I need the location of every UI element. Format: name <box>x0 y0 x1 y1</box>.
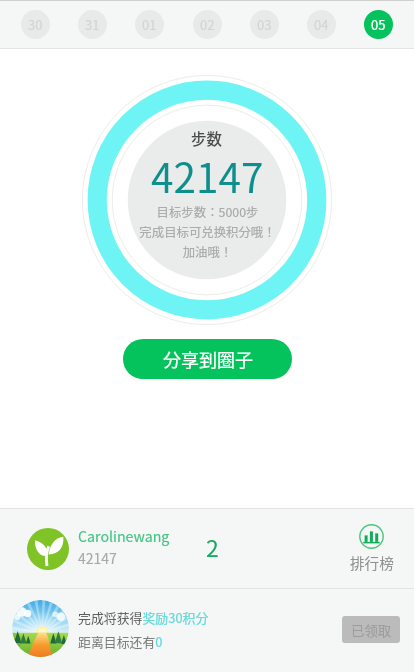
staticText: 步数 <box>191 127 223 149</box>
staticText: 42147 <box>151 146 264 205</box>
staticText: 目标步数：5000步 完成目标可兑换积分哦！ 加油哦！ <box>139 203 276 261</box>
staticText: 04 <box>314 15 329 34</box>
staticText: 分享到圈子 <box>163 346 253 372</box>
staticText: 已领取 <box>351 620 392 639</box>
staticText: 30 <box>28 15 43 34</box>
button[interactable] <box>0 589 414 672</box>
button[interactable]: 排行榜 <box>359 524 384 549</box>
staticText: 距离目标还有0 <box>78 632 163 651</box>
button[interactable]: 分享到圈子 <box>123 339 292 379</box>
staticText: 05 <box>371 15 386 34</box>
button[interactable] <box>0 509 414 588</box>
button[interactable]: 04 <box>307 10 336 39</box>
button[interactable]: 30 <box>21 10 50 39</box>
staticText: 31 <box>85 15 100 34</box>
button[interactable]: 31 <box>78 10 107 39</box>
staticText: 02 <box>200 15 215 34</box>
button[interactable]: 02 <box>193 10 222 39</box>
staticText: Carolinewang <box>78 526 170 547</box>
staticText: 01 <box>142 15 157 34</box>
staticText: 03 <box>257 15 272 34</box>
staticText: 42147 <box>78 548 117 568</box>
button[interactable]: 01 <box>135 10 164 39</box>
staticText: 排行榜 <box>350 552 394 573</box>
button[interactable]: 03 <box>250 10 279 39</box>
button[interactable]: 已领取 <box>342 616 400 643</box>
staticText: 完成将获得奖励30积分 <box>78 608 209 627</box>
button[interactable]: 05 <box>364 10 393 39</box>
staticText: 2 <box>206 530 219 563</box>
